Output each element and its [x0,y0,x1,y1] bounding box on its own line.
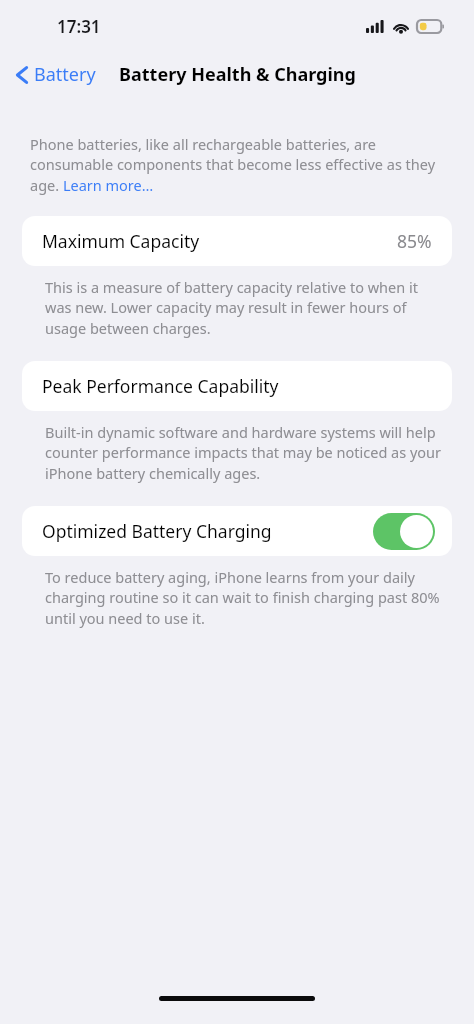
staticText: Peak Performance Capability [42,374,432,398]
staticText: To reduce battery aging, iPhone learns f… [45,567,444,629]
staticText: 17:31 [57,15,101,38]
staticText: This is a measure of battery capacity re… [45,277,444,339]
button[interactable]: Maximum Capacity [22,216,452,266]
button[interactable]: Optimized Battery Charging [22,506,452,556]
button[interactable]: Back [12,58,100,91]
button[interactable]: Phone batteries, like all rechargeable b… [30,134,442,196]
staticText: Battery Health & Charging [119,62,356,87]
other: Back [16,65,28,85]
staticText: Optimized Battery Charging [42,519,373,543]
staticText: 85% [397,229,432,253]
button[interactable]: Peak Performance Capability [22,361,452,411]
staticText: Built-in dynamic software and hardware s… [45,422,444,484]
staticText: Battery [34,62,96,87]
button[interactable]: Optimized Battery Charging toggle [373,513,435,550]
staticText: Maximum Capacity [42,229,397,253]
